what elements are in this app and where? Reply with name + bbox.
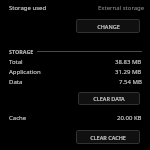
staticText: CLEAR DATA xyxy=(93,95,125,102)
button[interactable]: Cache xyxy=(0,114,150,124)
button[interactable]: CHANGE xyxy=(76,19,140,33)
staticText: Data xyxy=(9,78,23,86)
staticText: STORAGE xyxy=(9,48,34,55)
button[interactable]: CLEAR DATA xyxy=(78,92,140,105)
button[interactable]: Total xyxy=(0,58,150,68)
staticText: Cache xyxy=(9,114,27,122)
staticText: Total xyxy=(9,58,23,66)
staticText: 7.54 MB xyxy=(119,78,142,86)
staticText: 38.83 MB xyxy=(115,58,142,66)
staticText: 31.29 MB xyxy=(115,68,142,76)
staticText: Application xyxy=(9,68,41,76)
staticText: Storage used xyxy=(9,4,47,12)
button[interactable]: Data xyxy=(0,78,150,88)
staticText: External storage xyxy=(98,4,145,12)
button[interactable]: Application xyxy=(0,68,150,78)
button[interactable]: CLEAR CACHE xyxy=(76,130,140,144)
staticText: 20.00 KB xyxy=(117,114,142,122)
staticText: CLEAR CACHE xyxy=(90,134,126,141)
staticText: CHANGE xyxy=(97,23,120,30)
